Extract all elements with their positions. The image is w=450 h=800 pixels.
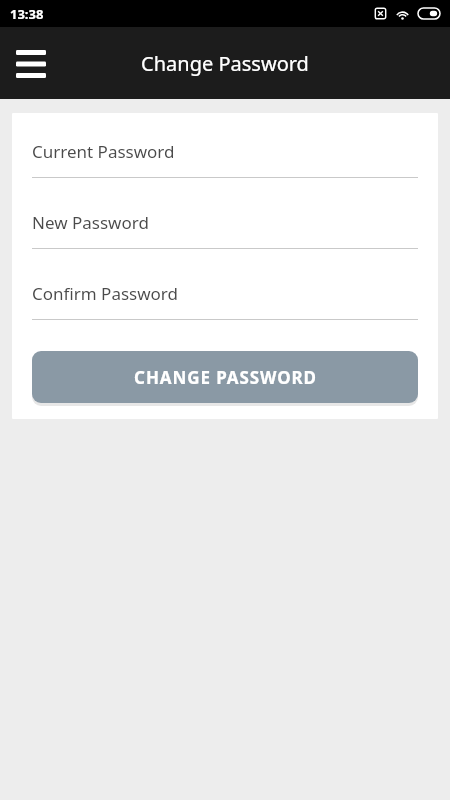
staticText: Confirm Password	[32, 282, 178, 305]
button[interactable]: CHANGE PASSWORD	[32, 351, 418, 403]
staticText: 13:38	[10, 5, 44, 23]
button[interactable]: Open navigation menu	[8, 41, 53, 86]
staticText: Current Password	[32, 140, 175, 163]
button[interactable]: New Password	[32, 196, 418, 267]
button[interactable]: Confirm Password	[32, 267, 418, 338]
button[interactable]: Current Password	[32, 125, 418, 196]
staticText: New Password	[32, 211, 149, 234]
staticText: CHANGE PASSWORD	[134, 366, 317, 389]
staticText: Change Password	[141, 50, 309, 77]
